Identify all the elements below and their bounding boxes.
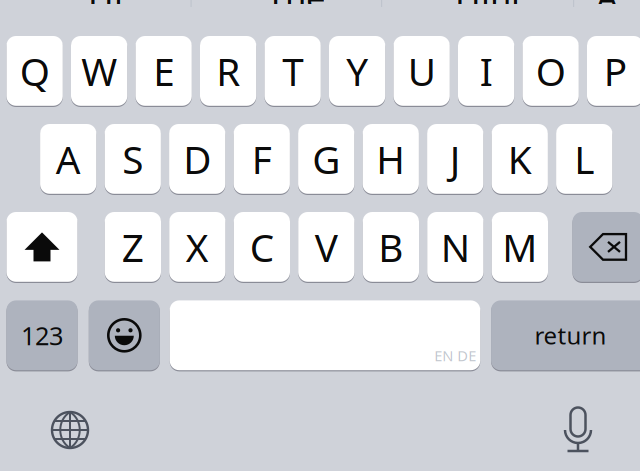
button[interactable]: Dictation <box>546 398 610 462</box>
button[interactable]: return <box>491 300 640 370</box>
staticText: C <box>250 221 274 272</box>
button[interactable]: R <box>200 36 256 106</box>
button[interactable]: Y <box>329 36 385 106</box>
staticText: W <box>81 45 117 96</box>
staticText: I <box>480 45 493 96</box>
button[interactable]: E <box>135 36 192 106</box>
staticText: The <box>266 0 326 20</box>
button[interactable]: F <box>234 124 290 194</box>
staticText: return <box>535 319 607 351</box>
button[interactable]: Emoji <box>89 300 160 370</box>
staticText: J <box>450 133 461 184</box>
button[interactable]: I <box>458 36 514 106</box>
staticText: Hihi <box>455 0 520 20</box>
staticText: ’A <box>592 0 618 20</box>
button[interactable]: W <box>71 36 127 106</box>
button[interactable]: X <box>169 212 225 282</box>
staticText: K <box>508 133 532 184</box>
staticText: EN DE <box>434 346 476 365</box>
staticText: D <box>183 133 211 184</box>
staticText: N <box>441 221 470 272</box>
staticText: T <box>282 45 303 96</box>
button[interactable]: P <box>587 36 640 106</box>
button[interactable]: H <box>363 124 419 194</box>
staticText: Q <box>20 45 50 96</box>
button[interactable]: V <box>298 212 354 282</box>
staticText: E <box>153 45 174 96</box>
button[interactable]: D <box>169 124 225 194</box>
button[interactable]: G <box>298 124 354 194</box>
staticText: A <box>56 133 81 184</box>
button[interactable]: L <box>556 124 612 194</box>
button[interactable]: Space <box>170 300 480 370</box>
button[interactable]: Next keyboard <box>38 398 102 462</box>
button[interactable]: J <box>427 124 483 194</box>
button[interactable]: Shift <box>6 212 77 282</box>
staticText: U <box>408 45 436 96</box>
staticText: Hi <box>88 0 123 20</box>
button[interactable]: Q <box>6 36 63 106</box>
staticText: L <box>574 133 594 184</box>
button[interactable]: N <box>427 212 483 282</box>
staticText: H <box>376 133 405 184</box>
staticText: V <box>315 221 338 272</box>
button[interactable]: Z <box>105 212 161 282</box>
staticText: 123 <box>21 318 63 352</box>
staticText: X <box>186 221 209 272</box>
button[interactable]: K <box>492 124 548 194</box>
staticText: Y <box>346 45 368 96</box>
button[interactable]: B <box>363 212 419 282</box>
staticText: O <box>536 45 566 96</box>
staticText: F <box>252 133 272 184</box>
button[interactable]: A <box>40 124 96 194</box>
button[interactable]: O <box>522 36 579 106</box>
button[interactable]: M <box>492 212 548 282</box>
staticText: R <box>216 45 240 96</box>
staticText: B <box>378 221 403 272</box>
staticText: P <box>604 45 627 96</box>
button[interactable]: T <box>264 36 321 106</box>
button[interactable]: S <box>105 124 161 194</box>
staticText: S <box>122 133 143 184</box>
staticText: Z <box>122 221 144 272</box>
staticText: G <box>312 133 340 184</box>
button[interactable]: C <box>234 212 290 282</box>
staticText: M <box>502 221 537 272</box>
button[interactable]: U <box>393 36 450 106</box>
button[interactable]: 123 <box>6 300 77 370</box>
button[interactable]: Delete <box>572 212 640 282</box>
